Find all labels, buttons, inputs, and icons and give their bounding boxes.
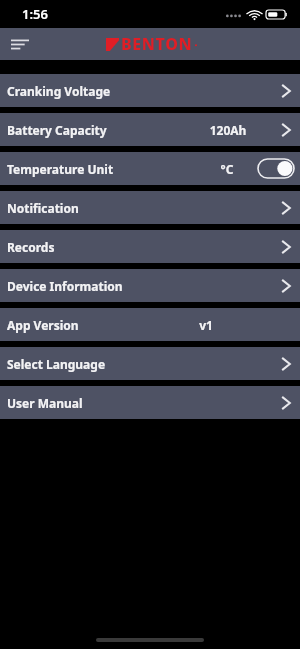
button[interactable]: User Manual <box>0 386 300 419</box>
staticText: Cranking Voltage <box>7 83 111 99</box>
button[interactable]: Device Information <box>0 269 300 302</box>
button[interactable]: Menu <box>6 30 34 58</box>
staticText: Battery Capacity <box>7 122 107 138</box>
button[interactable]: App Version <box>0 308 300 341</box>
staticText: User Manual <box>7 395 83 411</box>
staticText: App Version <box>7 317 79 333</box>
staticText: Select Language <box>7 356 106 372</box>
staticText: Notification <box>7 200 79 216</box>
button[interactable]: Battery Capacity <box>0 113 300 146</box>
staticText: Records <box>7 239 55 255</box>
button[interactable]: Cranking Voltage <box>0 74 300 107</box>
staticText: 1:56 <box>22 5 48 23</box>
button[interactable]: Notification <box>0 191 300 224</box>
button[interactable]: Temperature Unit <box>0 152 300 185</box>
staticText: Temperature Unit <box>7 161 114 177</box>
button[interactable]: Select Language <box>0 347 300 380</box>
button[interactable]: Temperature unit toggle <box>258 159 294 178</box>
staticText: Device Information <box>7 278 123 294</box>
button[interactable]: Records <box>0 230 300 263</box>
staticText: °C <box>197 161 257 177</box>
staticText: 120Ah <box>198 122 258 138</box>
staticText: v1 <box>176 317 236 333</box>
staticText: BENTON <box>121 33 193 55</box>
